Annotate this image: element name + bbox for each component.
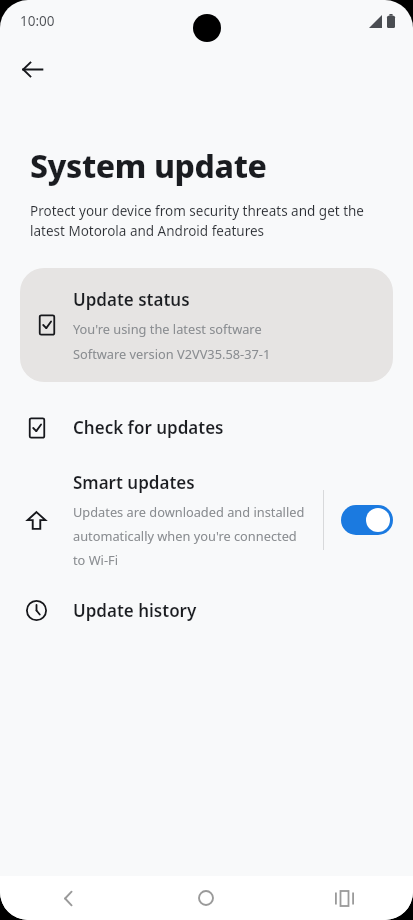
button[interactable]: Back (0, 876, 137, 920)
staticText: You're using the latest software (73, 320, 262, 337)
staticText: Smart updates (73, 471, 195, 494)
staticText: Update history (73, 599, 197, 622)
staticText: Check for updates (73, 416, 224, 439)
button[interactable]: Smart updates toggle (341, 505, 393, 535)
staticText: Protect your device from security threat… (30, 202, 383, 240)
staticText: System update (30, 144, 267, 188)
button[interactable]: Update status (20, 268, 393, 382)
button[interactable]: Smart updates (0, 471, 413, 569)
staticText: Update status (73, 288, 190, 311)
button[interactable]: Update history (0, 587, 413, 634)
staticText: 10:00 (20, 12, 55, 30)
button[interactable]: Recent apps (275, 876, 413, 920)
button[interactable]: Back (12, 49, 52, 89)
staticText: Software version V2VV35.58-37-1 (73, 345, 271, 362)
staticText: Updates are downloaded and installed aut… (73, 503, 307, 569)
button[interactable]: Home (137, 876, 275, 920)
button[interactable]: Check for updates (0, 404, 413, 451)
